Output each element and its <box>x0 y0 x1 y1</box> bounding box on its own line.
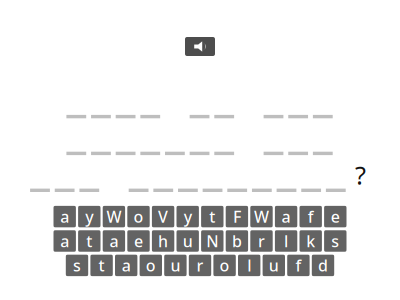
button[interactable]: a <box>275 206 297 227</box>
button[interactable]: F <box>226 206 248 227</box>
staticText: a <box>122 255 131 276</box>
button[interactable]: W <box>103 206 125 227</box>
staticText: o <box>133 206 143 227</box>
button[interactable]: N <box>201 230 223 252</box>
button[interactable]: u <box>164 255 187 276</box>
button[interactable]: t <box>201 206 223 227</box>
button[interactable]: r <box>250 230 273 252</box>
staticText: l <box>247 255 251 276</box>
button[interactable]: o <box>213 255 236 276</box>
button[interactable]: y <box>176 206 199 227</box>
staticText: W <box>254 206 269 227</box>
staticText: u <box>183 230 193 252</box>
button[interactable]: t <box>90 255 113 276</box>
staticText: a <box>109 230 118 252</box>
button[interactable]: V <box>152 206 174 227</box>
button[interactable]: b <box>226 230 248 252</box>
staticText: u <box>170 255 180 276</box>
staticText: o <box>220 255 230 276</box>
staticText: V <box>158 206 168 227</box>
button[interactable]: k <box>299 230 322 252</box>
staticText: y <box>184 206 192 227</box>
button[interactable]: u <box>176 230 199 252</box>
staticText: o <box>146 255 156 276</box>
staticText: f <box>295 255 301 276</box>
staticText: l <box>284 230 288 252</box>
staticText: e <box>134 230 143 252</box>
button[interactable]: a <box>115 255 137 276</box>
button[interactable]: e <box>324 206 346 227</box>
staticText: u <box>269 255 279 276</box>
staticText: W <box>106 206 121 227</box>
staticText: s <box>331 230 339 252</box>
button[interactable]: s <box>66 255 88 276</box>
staticText: a <box>282 206 291 227</box>
button[interactable]: h <box>152 230 174 252</box>
button[interactable]: f <box>299 206 322 227</box>
staticText: F <box>233 206 241 227</box>
staticText: t <box>209 206 215 227</box>
staticText: e <box>331 206 340 227</box>
staticText: r <box>258 230 265 252</box>
button[interactable]: Play audio <box>185 37 215 56</box>
button[interactable]: l <box>238 255 260 276</box>
button[interactable]: a <box>53 206 76 227</box>
button[interactable]: y <box>78 206 100 227</box>
staticText: a <box>60 206 69 227</box>
button[interactable]: o <box>127 206 150 227</box>
button[interactable]: u <box>263 255 285 276</box>
staticText: a <box>60 230 69 252</box>
staticText: t <box>99 255 105 276</box>
button[interactable]: d <box>312 255 334 276</box>
staticText: d <box>318 255 328 276</box>
button[interactable]: a <box>103 230 125 252</box>
staticText: r <box>196 255 203 276</box>
staticText: t <box>86 230 92 252</box>
button[interactable]: t <box>78 230 100 252</box>
button[interactable]: l <box>275 230 297 252</box>
staticText: ? <box>355 158 366 192</box>
staticText: y <box>85 206 93 227</box>
staticText: h <box>158 230 168 252</box>
staticText: k <box>306 230 315 252</box>
staticText: s <box>73 255 81 276</box>
button[interactable]: o <box>140 255 162 276</box>
button[interactable]: r <box>189 255 211 276</box>
button[interactable]: W <box>250 206 273 227</box>
staticText: f <box>308 206 314 227</box>
button[interactable]: a <box>53 230 76 252</box>
button[interactable]: f <box>287 255 310 276</box>
button[interactable]: e <box>127 230 150 252</box>
button[interactable]: s <box>324 230 346 252</box>
staticText: N <box>206 230 218 252</box>
staticText: b <box>232 230 242 252</box>
